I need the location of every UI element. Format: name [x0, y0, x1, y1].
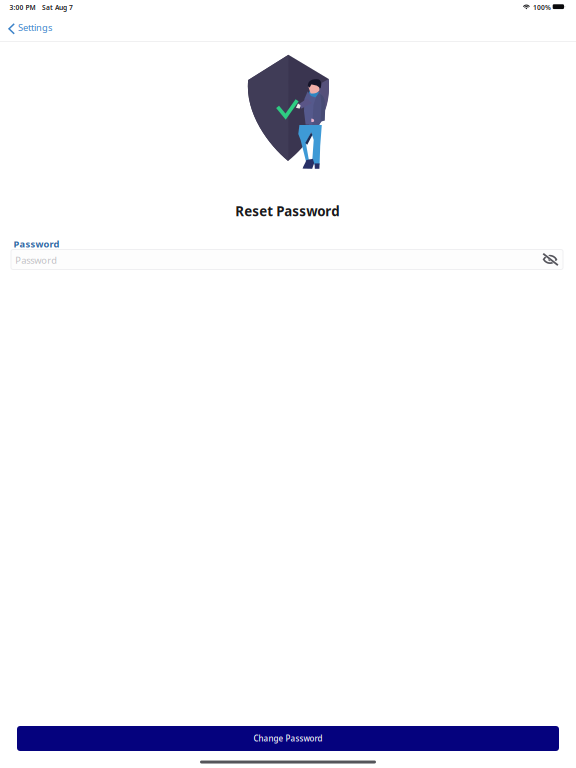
- staticText: 100%: [533, 3, 551, 12]
- staticText: Settings: [18, 21, 52, 34]
- button[interactable]: Settings: [0, 20, 56, 40]
- staticText: 3:00 PM: [9, 3, 35, 12]
- staticText: Password: [15, 254, 57, 266]
- staticText: Sat Aug 7: [42, 3, 73, 12]
- staticText: Reset Password: [235, 202, 339, 220]
- staticText: Password: [14, 238, 60, 250]
- button[interactable]: Show password: [540, 249, 563, 269]
- staticText: Change Password: [253, 733, 322, 744]
- button[interactable]: Change Password: [17, 726, 559, 751]
